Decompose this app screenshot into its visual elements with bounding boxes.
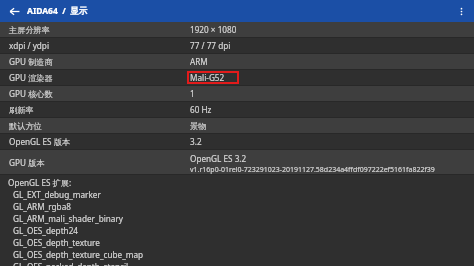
button[interactable]: 默认方位 (0, 118, 474, 133)
staticText: OpenGL ES 3.2 (190, 153, 247, 164)
button[interactable]: GPU 渲染器 (0, 70, 474, 85)
staticText: GL_OES_depth_texture (13, 237, 100, 248)
button[interactable]: OpenGL ES 版本 (0, 134, 474, 149)
staticText: GPU 渲染器 (9, 72, 53, 83)
staticText: GPU 版本 (9, 157, 45, 168)
staticText: GL_OES_depth_texture_cube_map (13, 249, 144, 260)
staticText: 1 (190, 88, 195, 99)
button[interactable]: GPU 核心数 (0, 86, 474, 101)
button[interactable]: More options (451, 1, 471, 21)
staticText: 1920 × 1080 (190, 24, 237, 35)
button[interactable]: xdpi / ydpi (0, 38, 474, 53)
button[interactable]: OpenGL ES 扩展: (0, 175, 474, 266)
button[interactable]: 刷新率 (0, 102, 474, 117)
staticText: GL_OES_depth24 (13, 225, 79, 236)
staticText: xdpi / ydpi (9, 40, 50, 51)
staticText: 景物 (190, 121, 207, 131)
staticText: GL_OES_packed_depth_stencil (13, 261, 129, 266)
button[interactable]: GPU 制造商 (0, 54, 474, 69)
staticText: Mali-G52 (190, 72, 225, 83)
staticText: 3.2 (190, 136, 202, 147)
staticText: 60 Hz (190, 104, 212, 115)
staticText: 默认方位 (9, 121, 42, 131)
button[interactable]: 主屏分辨率 (0, 22, 474, 37)
staticText: GPU 制造商 (9, 56, 53, 67)
staticText: 77 / 77 dpi (190, 40, 231, 51)
button[interactable]: Back (4, 1, 24, 21)
staticText: 主屏分辨率 (9, 25, 50, 35)
staticText: AIDA64 / 显示 (27, 5, 88, 17)
staticText: v1.r16p0-01rel0-723291023-20191127.58d23… (190, 165, 435, 174)
staticText: ARM (190, 56, 208, 67)
staticText: OpenGL ES 扩展: (8, 177, 72, 188)
staticText: GPU 核心数 (9, 88, 53, 99)
staticText: GL_ARM_mali_shader_binary (13, 213, 123, 224)
button[interactable]: GPU 版本 (0, 150, 474, 174)
staticText: GL_EXT_debug_marker (13, 189, 101, 200)
staticText: OpenGL ES 版本 (9, 136, 71, 147)
staticText: 刷新率 (9, 105, 34, 115)
staticText: GL_ARM_rgba8 (13, 201, 71, 212)
